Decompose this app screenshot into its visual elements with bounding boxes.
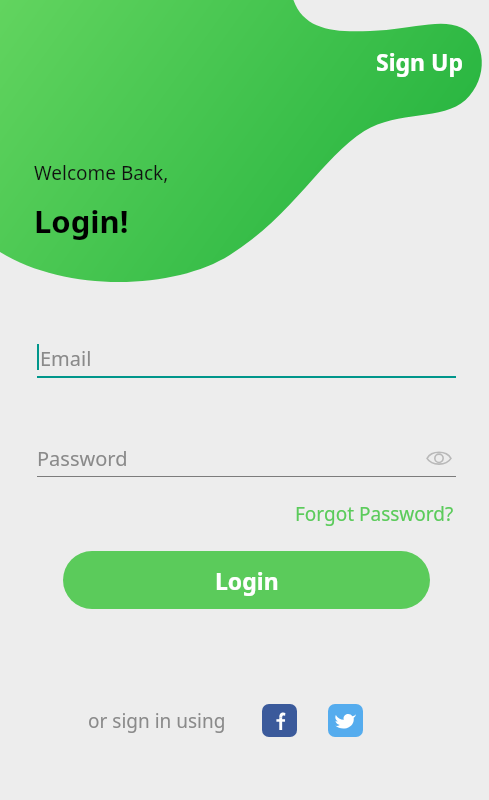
staticText: Login [215, 565, 279, 596]
staticText: or sign in using [88, 708, 226, 734]
button[interactable]: Forgot Password? [293, 499, 456, 529]
button[interactable]: Sign in with Twitter [328, 704, 363, 737]
button[interactable]: Email [37, 340, 456, 378]
button[interactable]: Sign in with Facebook [262, 704, 297, 737]
staticText: Welcome Back, [34, 160, 169, 186]
button[interactable]: Show password [422, 441, 456, 475]
button[interactable]: Password [37, 440, 456, 477]
staticText: Email [40, 345, 92, 372]
staticText: Sign Up [376, 46, 463, 77]
button[interactable]: Login [63, 551, 430, 609]
staticText: Password [37, 445, 128, 472]
staticText: Forgot Password? [295, 501, 454, 527]
button[interactable]: Sign Up [372, 44, 467, 79]
staticText: Login! [34, 200, 129, 242]
